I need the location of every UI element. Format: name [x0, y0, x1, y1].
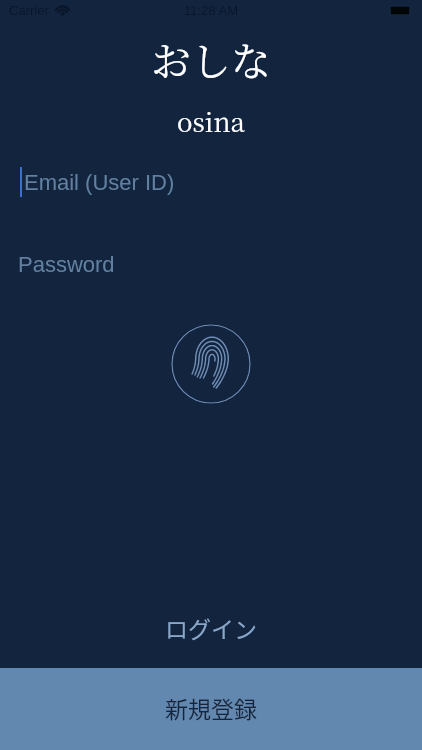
staticText: osina — [0, 102, 422, 139]
staticText: Email (User ID) — [24, 170, 175, 195]
staticText: 新規登録 — [165, 691, 257, 724]
button[interactable]: Email (User ID) — [0, 160, 422, 204]
button[interactable]: ログイン — [0, 586, 422, 668]
button[interactable]: Fingerprint login — [171, 324, 251, 404]
button[interactable]: Password — [0, 242, 422, 286]
staticText: 11:28 AM — [184, 3, 238, 18]
button[interactable]: 新規登録 — [0, 668, 422, 750]
staticText: Password — [18, 252, 115, 277]
staticText: ログイン — [165, 611, 257, 644]
staticText: Carrier — [9, 3, 49, 18]
staticText: おしな — [0, 30, 422, 87]
